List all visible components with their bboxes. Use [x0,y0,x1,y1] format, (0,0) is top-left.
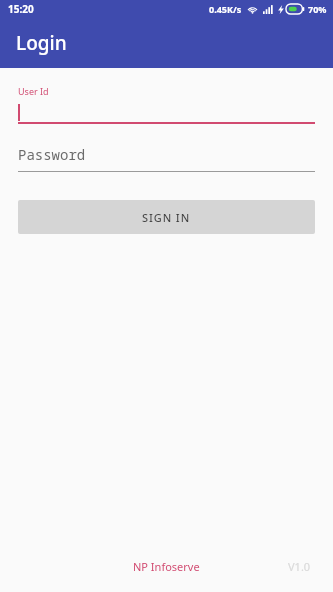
staticText: 0.45K/s [209,3,242,15]
staticText: SIGN IN [142,210,191,225]
staticText: 70% [308,3,327,15]
button[interactable]: User Id [0,85,333,124]
button[interactable]: NP Infoserve [133,559,200,574]
staticText: Login [16,30,67,56]
staticText: V1.0 [288,559,311,574]
button[interactable]: Password [0,145,333,172]
button[interactable]: SIGN IN [18,200,315,234]
staticText: User Id [18,85,49,97]
staticText: Password [18,145,86,164]
staticText: 15:20 [8,2,34,16]
